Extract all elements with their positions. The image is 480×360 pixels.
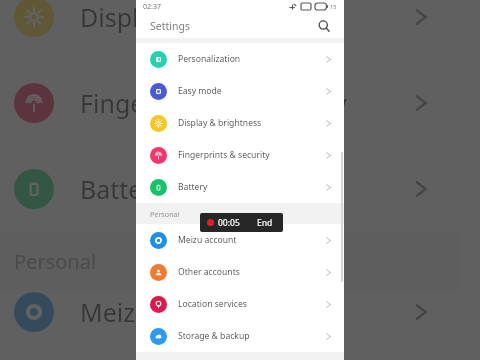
staticText: Settings [150, 19, 190, 33]
staticText: Storage & backup [178, 330, 250, 342]
staticText: Meizu account [178, 234, 237, 246]
staticText: Meizu account [80, 295, 251, 329]
button[interactable]: Meizu account [136, 224, 344, 256]
staticText: Location services [178, 298, 247, 310]
staticText: Battery [178, 181, 208, 193]
button[interactable]: Display & brightness [136, 107, 344, 139]
button[interactable]: Other accounts [136, 256, 344, 288]
staticText: 00:05 [218, 217, 240, 229]
button[interactable]: Easy mode [136, 75, 344, 107]
staticText: 15 [330, 3, 337, 10]
button[interactable]: Personalization [136, 43, 344, 75]
button[interactable]: Battery [136, 171, 344, 203]
staticText: Other accounts [178, 266, 240, 278]
button[interactable]: Location services [136, 288, 344, 320]
staticText: Battery [80, 172, 166, 206]
staticText: Display & brightness [178, 117, 262, 129]
button[interactable]: Fingerprints & security [136, 139, 344, 171]
button[interactable]: Storage & backup [136, 320, 344, 352]
staticText: End [257, 217, 273, 229]
staticText: Easy mode [178, 85, 222, 97]
button[interactable]: End [254, 215, 276, 231]
staticText: Fingerprints & security [178, 149, 270, 161]
staticText: 02:37 [143, 2, 161, 12]
staticText: Fingerprints & security [80, 86, 347, 120]
staticText: Personal [14, 248, 97, 275]
button[interactable]: Search [314, 16, 334, 36]
staticText: Display & brightness [80, 0, 323, 34]
staticText: Personalization [178, 53, 241, 65]
staticText: Personal [150, 209, 180, 219]
